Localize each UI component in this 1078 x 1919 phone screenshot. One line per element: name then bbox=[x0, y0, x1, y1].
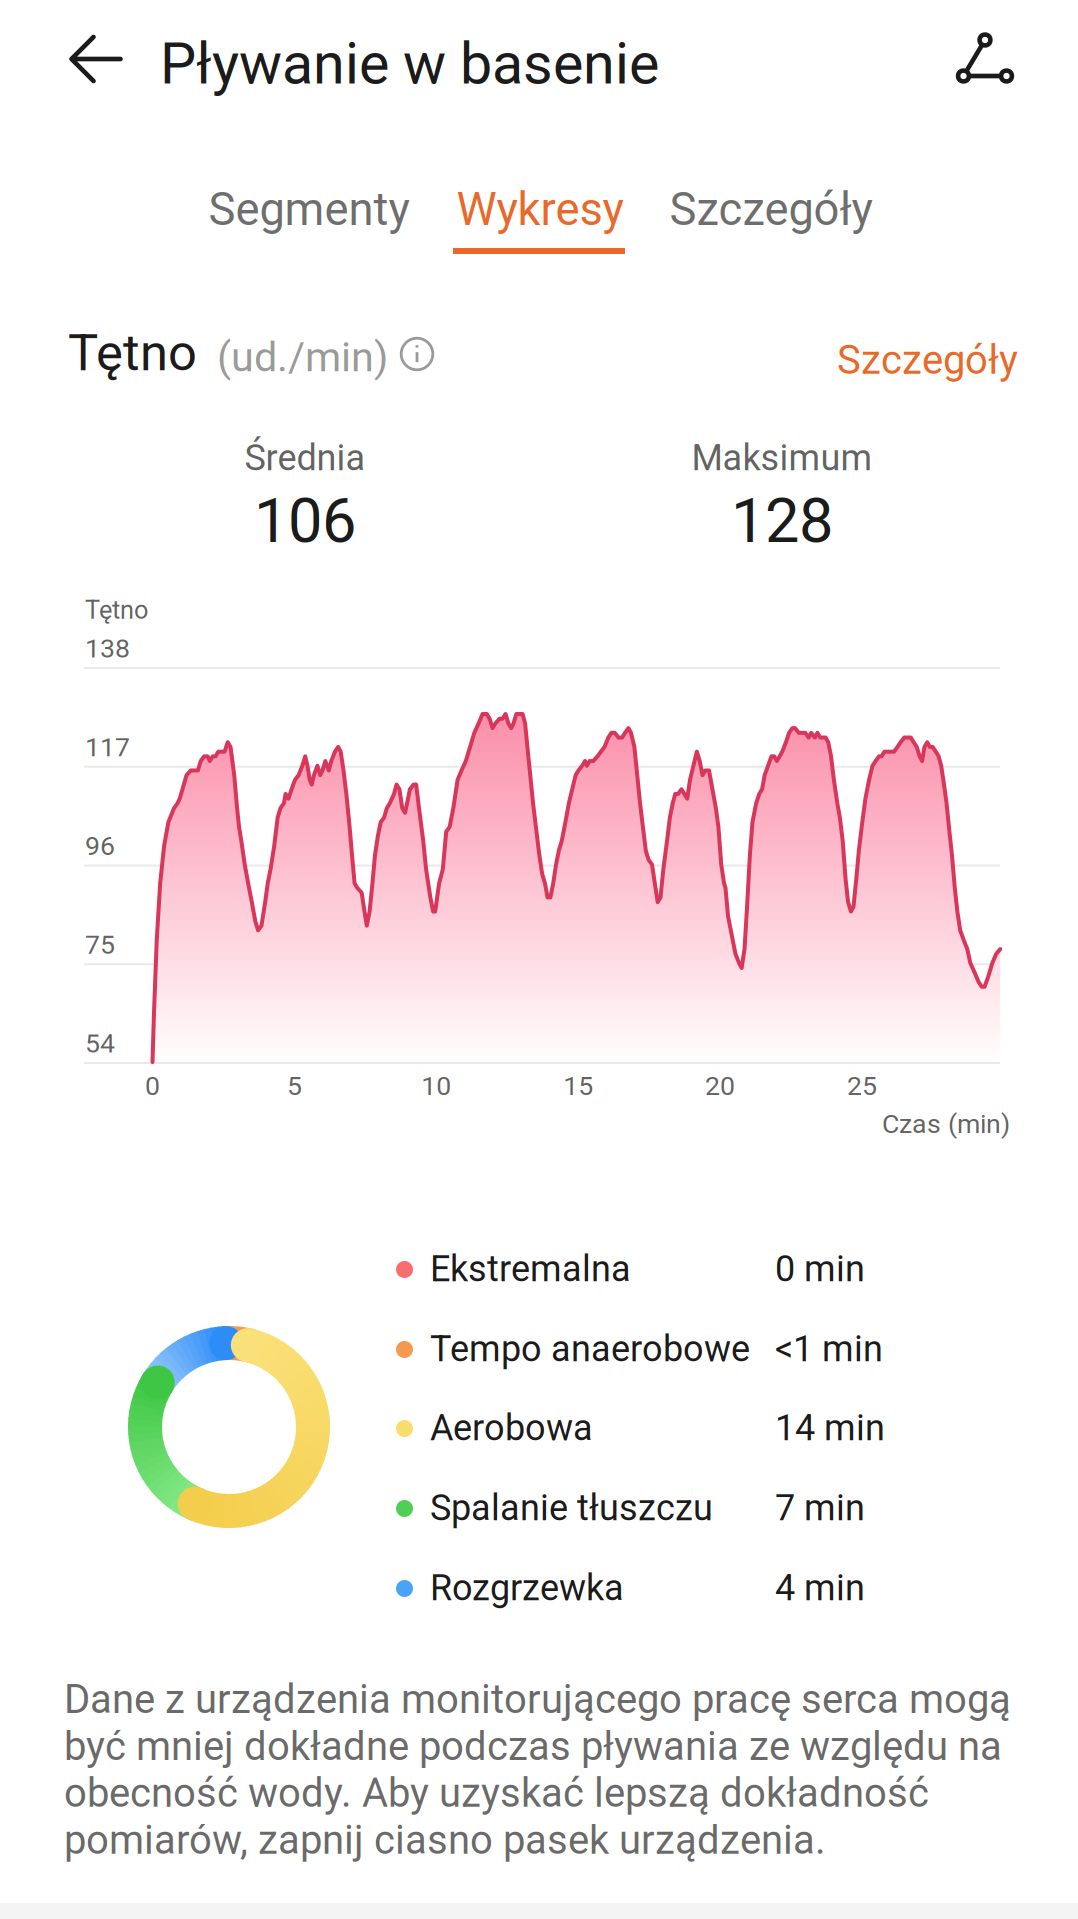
staticText: 117 bbox=[85, 731, 130, 763]
staticText: 106 bbox=[254, 485, 356, 557]
staticText: Segmenty bbox=[208, 183, 409, 236]
staticText: 20 bbox=[705, 1070, 735, 1102]
staticText: 10 bbox=[421, 1070, 451, 1102]
staticText: Ekstremalna bbox=[430, 1248, 631, 1290]
button[interactable]: Szczegóły bbox=[634, 183, 908, 275]
staticText: 25 bbox=[847, 1070, 877, 1102]
staticText: Pływanie w basenie bbox=[160, 30, 659, 98]
staticText: Średnia bbox=[244, 437, 365, 479]
button[interactable]: Segmenty bbox=[172, 183, 446, 275]
staticText: Maksimum bbox=[691, 437, 872, 479]
staticText: 54 bbox=[85, 1028, 115, 1059]
staticText: Szczegóły bbox=[837, 337, 1018, 383]
staticText: 5 bbox=[287, 1070, 302, 1102]
button[interactable]: Wstecz bbox=[46, 9, 146, 109]
staticText: <1 min bbox=[775, 1328, 883, 1370]
staticText: 75 bbox=[85, 929, 115, 960]
staticText: 128 bbox=[731, 485, 833, 557]
staticText: Rozgrzewka bbox=[430, 1567, 624, 1609]
staticText: 7 min bbox=[775, 1487, 865, 1529]
button[interactable]: Wykresy bbox=[430, 183, 650, 279]
staticText: Spalanie tłuszczu bbox=[430, 1487, 713, 1529]
button[interactable]: Szczegóły bbox=[762, 324, 1018, 396]
staticText: Tętno bbox=[85, 595, 148, 625]
button[interactable]: Udostępnij bbox=[935, 8, 1035, 108]
staticText: Tempo anaerobowe bbox=[430, 1328, 750, 1370]
staticText: 4 min bbox=[775, 1567, 865, 1609]
staticText: 0 bbox=[145, 1070, 160, 1102]
staticText: Dane z urządzenia monitorującego pracę s… bbox=[64, 1676, 1011, 1863]
staticText: Szczegóły bbox=[669, 183, 872, 236]
staticText: 96 bbox=[85, 830, 115, 861]
staticText: 0 min bbox=[775, 1248, 865, 1290]
staticText: 15 bbox=[563, 1070, 593, 1102]
staticText: 14 min bbox=[775, 1407, 885, 1449]
staticText: 138 bbox=[85, 633, 130, 664]
staticText: Wykresy bbox=[456, 183, 623, 236]
staticText: (ud./min) bbox=[217, 333, 388, 381]
staticText: Tętno bbox=[68, 323, 197, 383]
staticText: Aerobowa bbox=[430, 1407, 593, 1449]
staticText: Czas (min) bbox=[882, 1108, 1010, 1140]
